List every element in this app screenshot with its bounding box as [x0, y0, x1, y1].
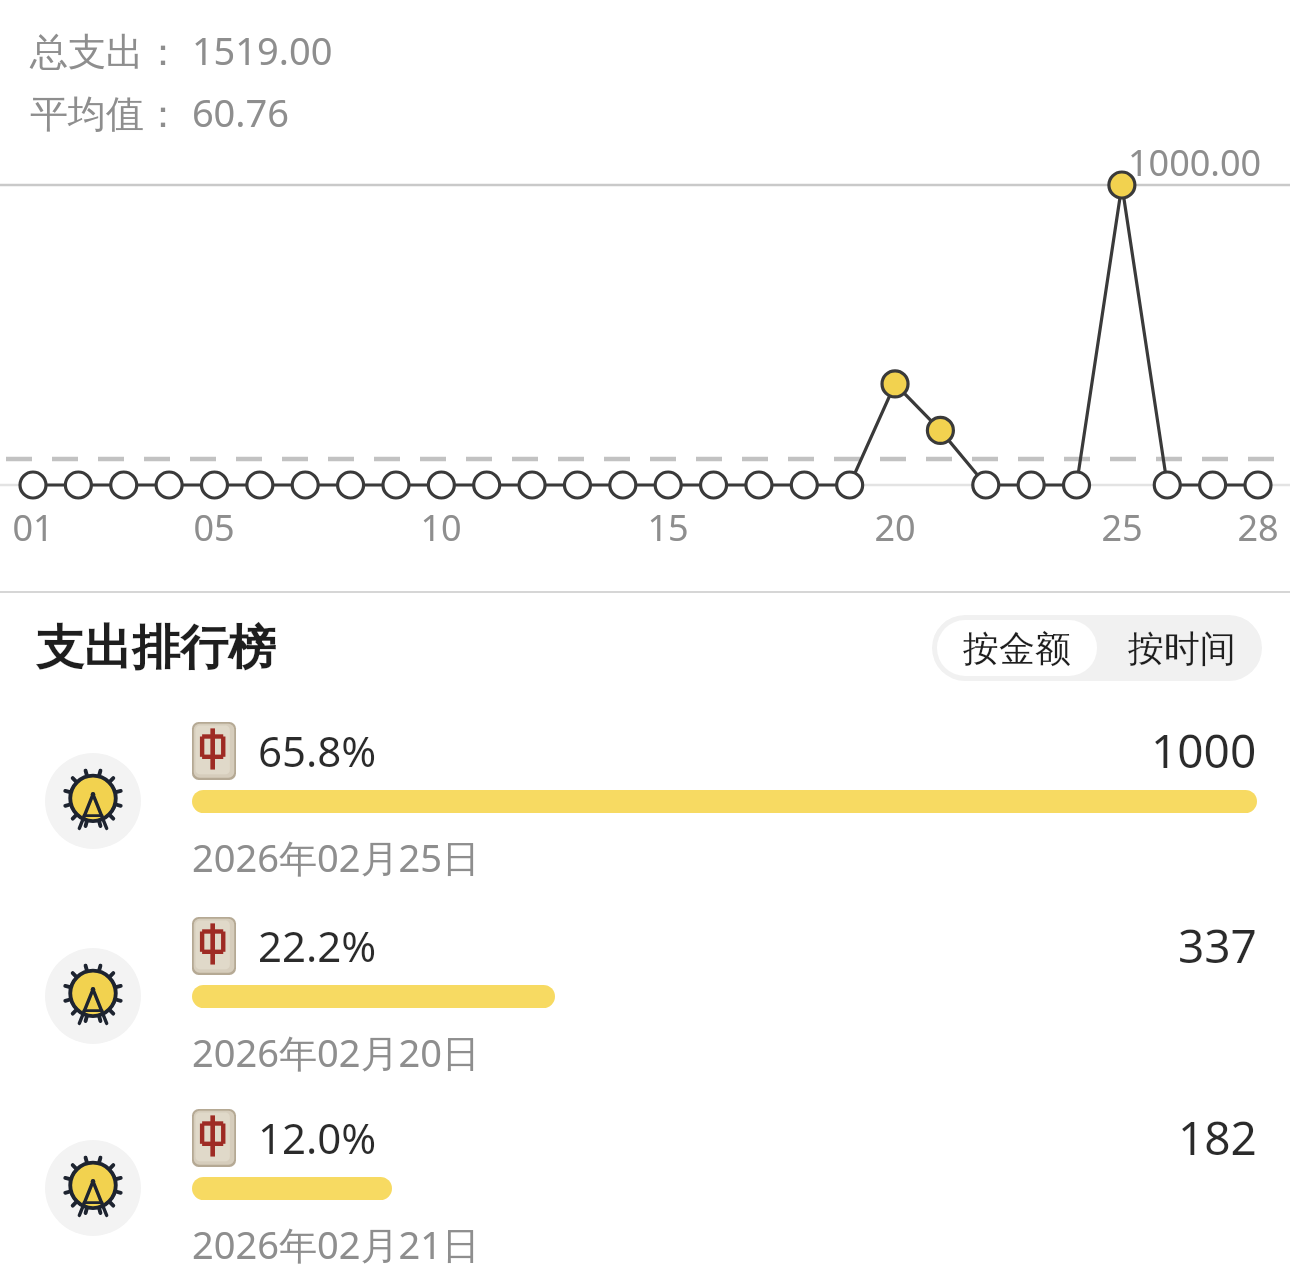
button[interactable]: 娱乐 [0, 703, 1290, 898]
button[interactable]: 娱乐 [0, 1093, 1290, 1283]
staticText: 支出排行榜 [36, 618, 276, 678]
staticText: 05 [182, 503, 246, 552]
staticText: 12.0% [258, 1109, 377, 1166]
staticText: 25 [1090, 503, 1154, 552]
staticText: 20 [863, 503, 927, 552]
staticText: 65.8% [258, 722, 377, 779]
staticText: 2026年02月25日 [192, 831, 480, 883]
button[interactable]: 按时间 [1102, 615, 1262, 681]
staticText: 按时间 [1128, 626, 1236, 671]
staticText: 22.2% [258, 917, 377, 974]
staticText: 337 [1178, 914, 1257, 977]
staticText: 15 [636, 503, 700, 552]
other: 娱乐 [45, 753, 141, 849]
staticText: 按金额 [963, 626, 1071, 671]
staticText: 1000 [1151, 719, 1257, 782]
staticText: 平均值： 60.76 [30, 86, 290, 138]
staticText: 2026年02月21日 [192, 1218, 480, 1270]
staticText: 1000.00 [1128, 138, 1262, 187]
staticText: 28 [1226, 503, 1290, 552]
staticText: 总支出： 1519.00 [30, 24, 333, 76]
other: 娱乐 [45, 1140, 141, 1236]
staticText: 2026年02月20日 [192, 1026, 480, 1078]
button[interactable]: 按金额 [937, 620, 1097, 676]
button[interactable]: 娱乐 [0, 898, 1290, 1093]
staticText: 01 [1, 503, 65, 552]
staticText: 182 [1178, 1106, 1257, 1169]
other: 娱乐 [45, 948, 141, 1044]
staticText: 10 [409, 503, 473, 552]
